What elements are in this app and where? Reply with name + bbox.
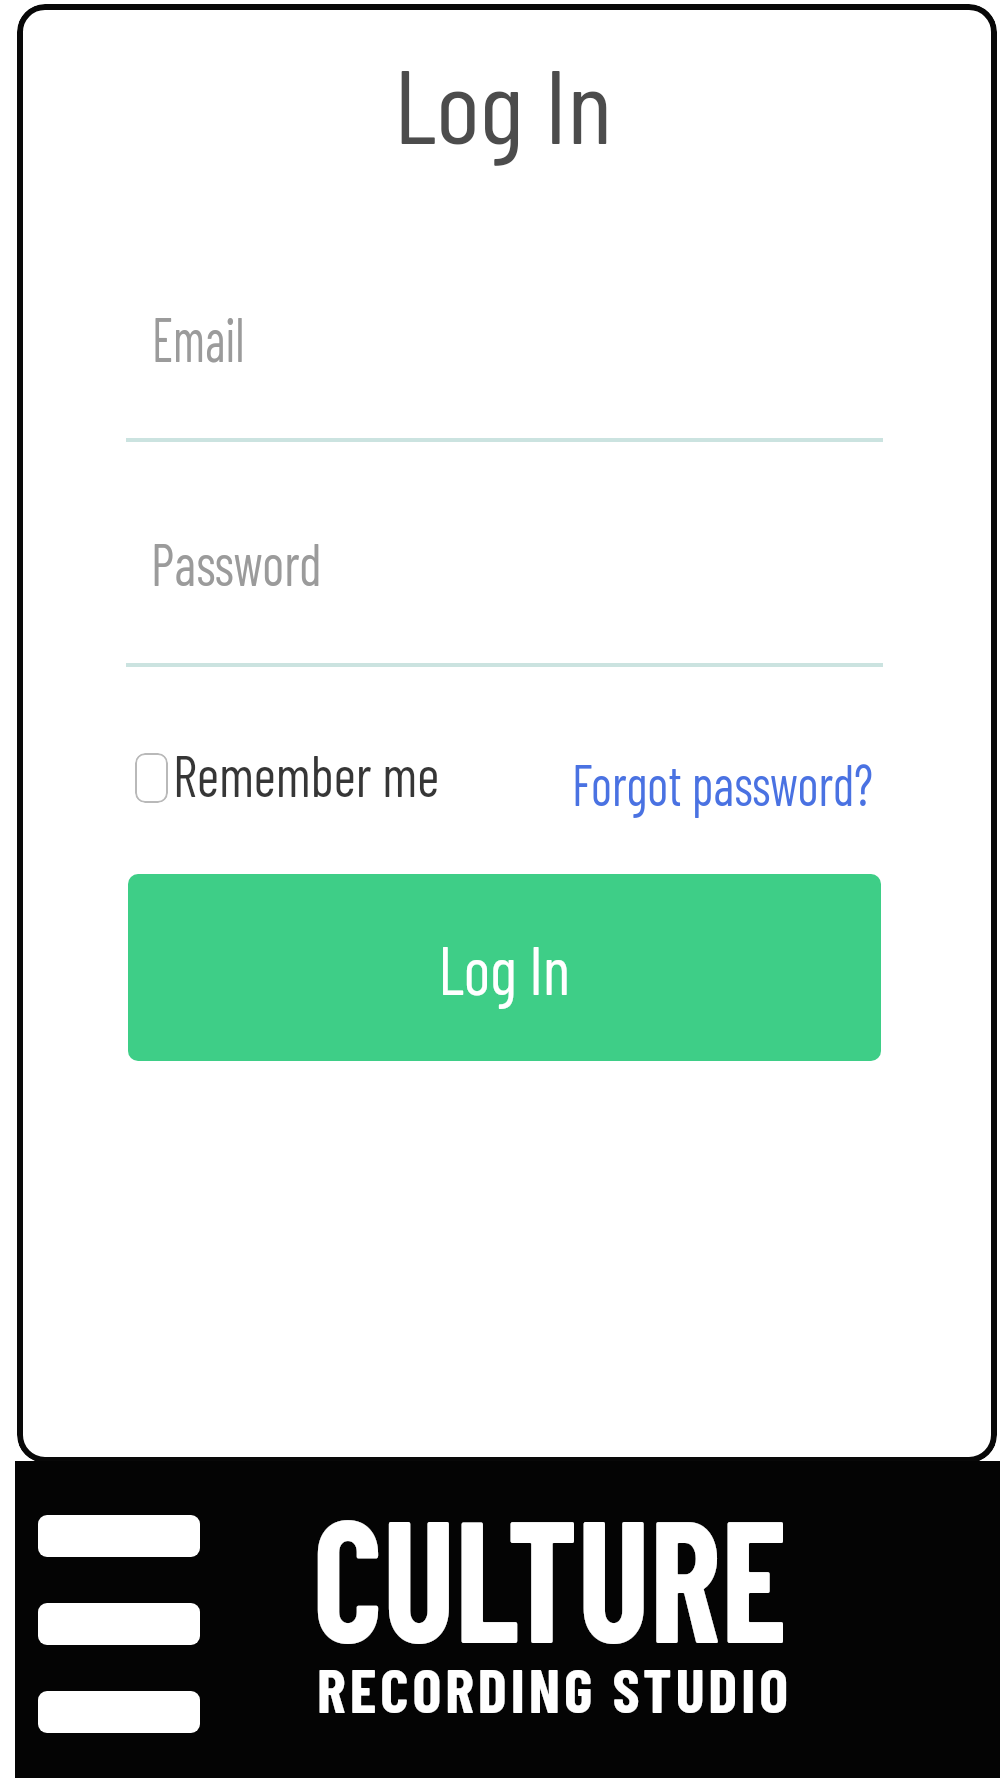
staticText: Log In xyxy=(394,40,613,165)
button[interactable]: Password xyxy=(126,509,883,667)
staticText: Remember me xyxy=(173,738,439,809)
button[interactable]: Email xyxy=(126,284,883,442)
button[interactable]: Log In xyxy=(128,874,881,1061)
button[interactable]: Forgot password? xyxy=(572,747,925,818)
staticText: Password xyxy=(151,526,322,598)
staticText: RECORDING STUDIO xyxy=(317,1652,792,1725)
button[interactable]: Remember me xyxy=(135,738,455,811)
button[interactable] xyxy=(38,1515,200,1733)
staticText: CULTURE xyxy=(313,1470,787,1678)
staticText: Log In xyxy=(438,926,570,1009)
staticText: Email xyxy=(152,299,245,375)
